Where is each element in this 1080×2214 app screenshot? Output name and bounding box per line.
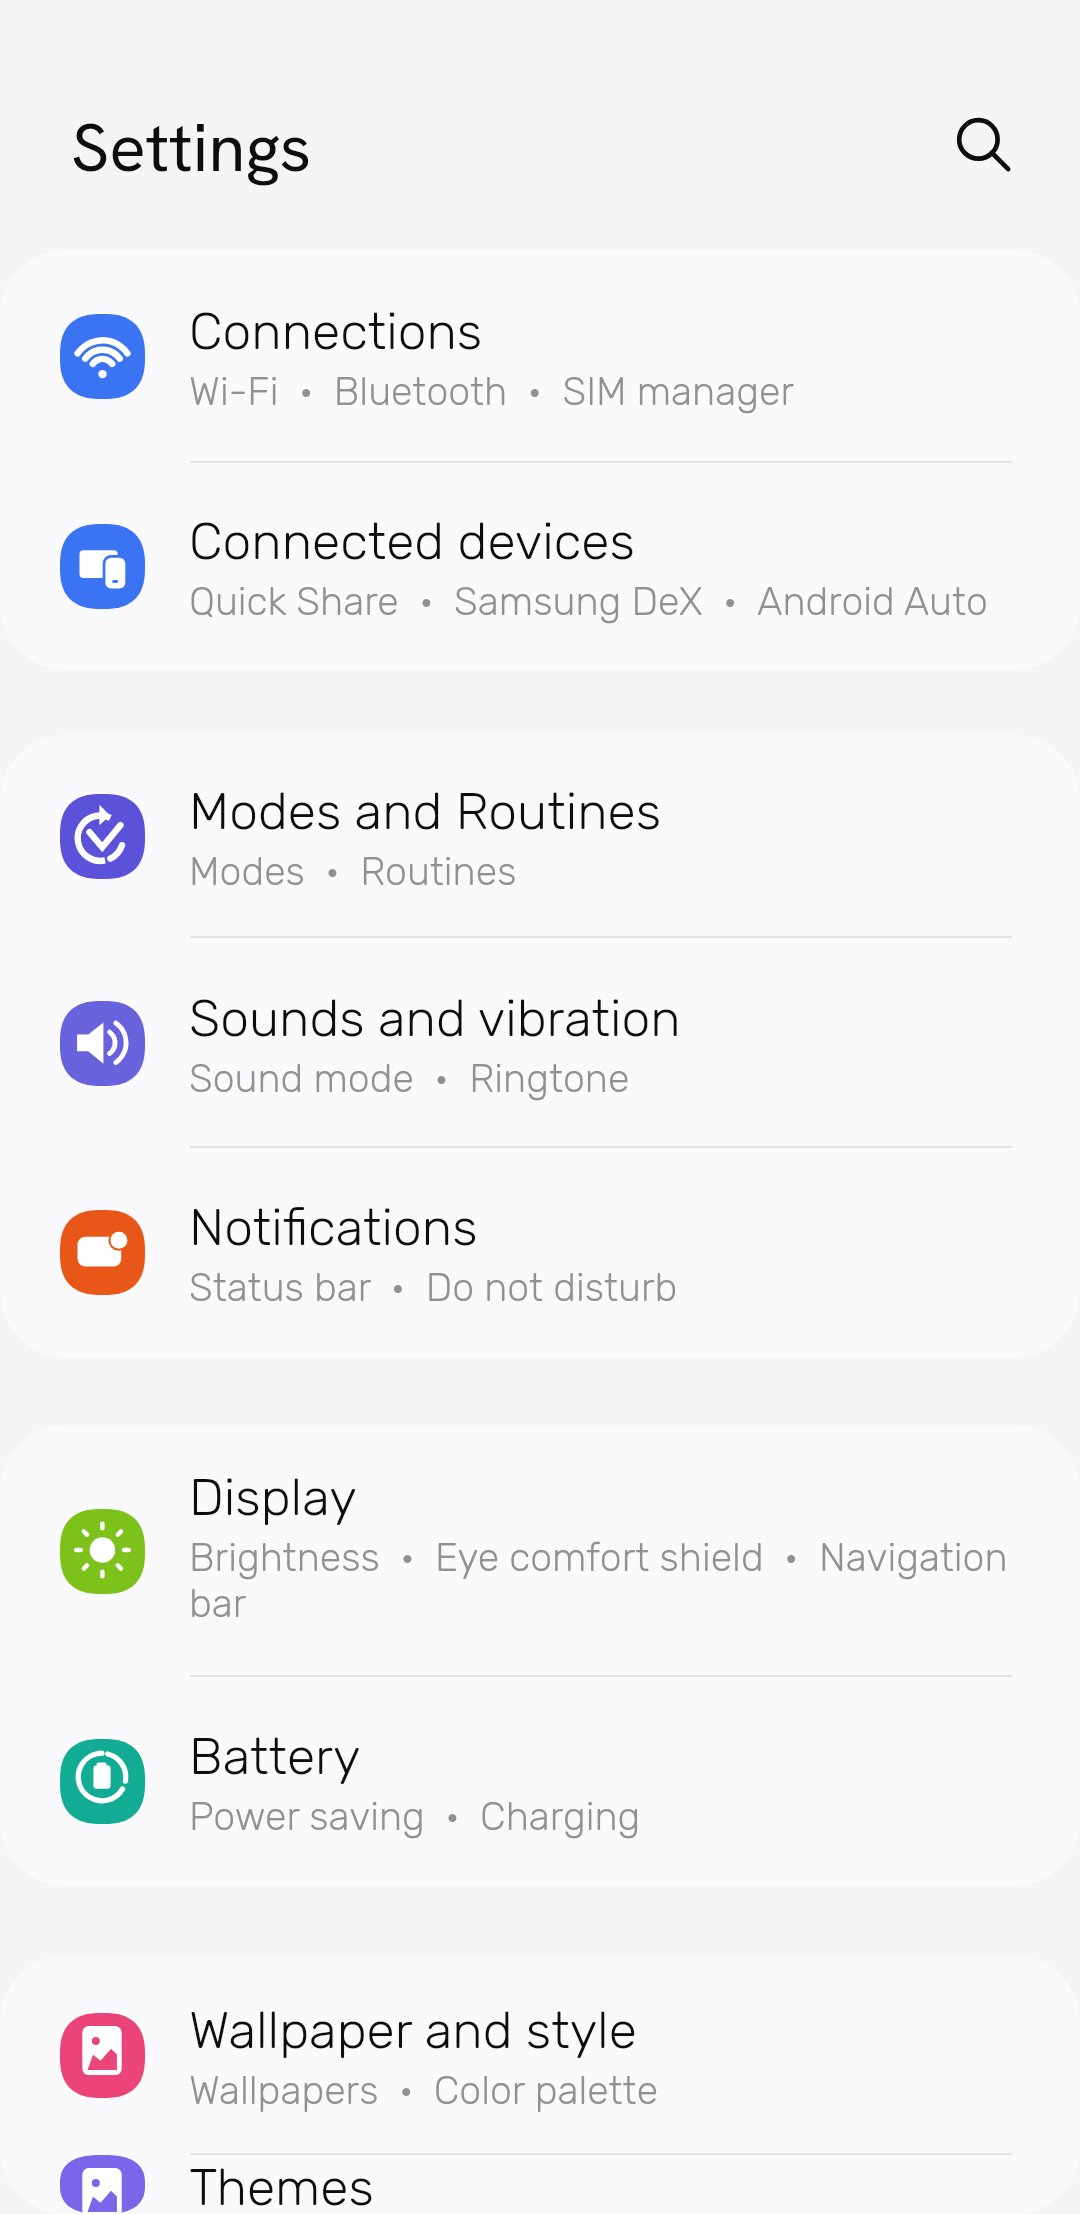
staticText: Connected devices bbox=[189, 511, 635, 572]
staticText: Connections bbox=[189, 301, 483, 362]
staticText: Notifications bbox=[189, 1197, 478, 1258]
staticText: Brightness • Eye comfort shield • Naviga… bbox=[189, 1534, 1038, 1626]
staticText: Sound mode • Ringtone bbox=[189, 1055, 630, 1101]
staticText: Sounds and vibration bbox=[189, 988, 681, 1049]
staticText: Quick Share • Samsung DeX • Android Auto bbox=[189, 578, 988, 624]
staticText: Battery bbox=[189, 1726, 361, 1787]
button[interactable]: Wallpaper and style bbox=[0, 1956, 1080, 2155]
button[interactable]: Display bbox=[0, 1425, 1080, 1677]
staticText: Power saving • Charging bbox=[189, 1793, 641, 1839]
button[interactable]: Connected devices bbox=[0, 463, 1080, 670]
staticText: Wi-Fi • Bluetooth • SIM manager bbox=[189, 368, 795, 414]
staticText: Display bbox=[189, 1467, 357, 1528]
button[interactable]: Notifications bbox=[0, 1148, 1080, 1357]
button[interactable]: Modes and Routines bbox=[0, 735, 1080, 938]
staticText: Modes • Routines bbox=[189, 848, 517, 894]
button[interactable]: Connections bbox=[0, 250, 1080, 463]
staticText: Settings bbox=[71, 103, 312, 192]
staticText: Themes bbox=[189, 2157, 374, 2214]
button[interactable]: Sounds and vibration bbox=[0, 938, 1080, 1148]
button[interactable]: Search bbox=[943, 88, 1053, 198]
button[interactable]: Themes bbox=[0, 2155, 1080, 2214]
staticText: Wallpaper and style bbox=[189, 2000, 637, 2061]
button[interactable]: Battery bbox=[0, 1677, 1080, 1886]
staticText: Wallpapers • Color palette bbox=[189, 2067, 659, 2113]
staticText: Modes and Routines bbox=[189, 781, 661, 842]
staticText: Status bar • Do not disturb bbox=[189, 1264, 678, 1310]
